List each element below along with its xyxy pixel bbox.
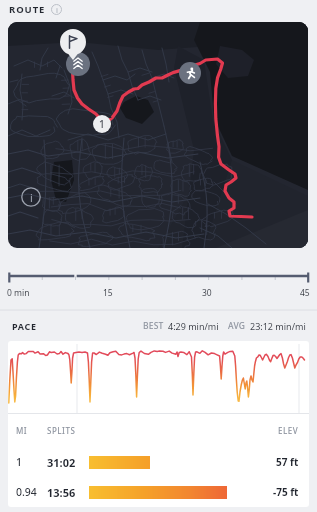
- staticText: 23:12 min/mi: [250, 320, 306, 332]
- staticText: BEST: [143, 320, 164, 332]
- staticText: ROUTE: [9, 3, 46, 16]
- staticText: 1: [99, 117, 105, 131]
- staticText: 0 min: [7, 287, 30, 299]
- staticText: i: [30, 190, 33, 205]
- staticText: 1: [16, 455, 23, 469]
- staticText: SPLITS: [47, 425, 76, 436]
- staticText: i: [56, 5, 58, 15]
- button[interactable]: Runner position: [179, 62, 201, 84]
- staticText: 45: [300, 287, 310, 299]
- staticText: 15: [103, 287, 113, 299]
- button[interactable]: Route map: [8, 22, 308, 248]
- staticText: -75 ft: [273, 485, 299, 499]
- button[interactable]: Expand route: [66, 52, 90, 76]
- staticText: PACE: [12, 320, 37, 332]
- button[interactable]: 0.94: [16, 477, 299, 507]
- button[interactable]: 1: [16, 447, 299, 477]
- staticText: MI: [16, 425, 28, 436]
- staticText: 0.94: [16, 485, 37, 499]
- staticText: 30: [202, 287, 212, 299]
- staticText: 13:56: [47, 485, 76, 500]
- staticText: 57 ft: [276, 455, 299, 469]
- button[interactable]: Map info: [21, 187, 41, 207]
- staticText: 31:02: [47, 455, 76, 470]
- staticText: AVG: [228, 320, 246, 332]
- button[interactable]: Route info: [51, 4, 62, 15]
- button[interactable]: Time range: [0, 262, 317, 302]
- staticText: 4:29 min/mi: [168, 320, 219, 332]
- staticText: ELEV: [278, 425, 299, 436]
